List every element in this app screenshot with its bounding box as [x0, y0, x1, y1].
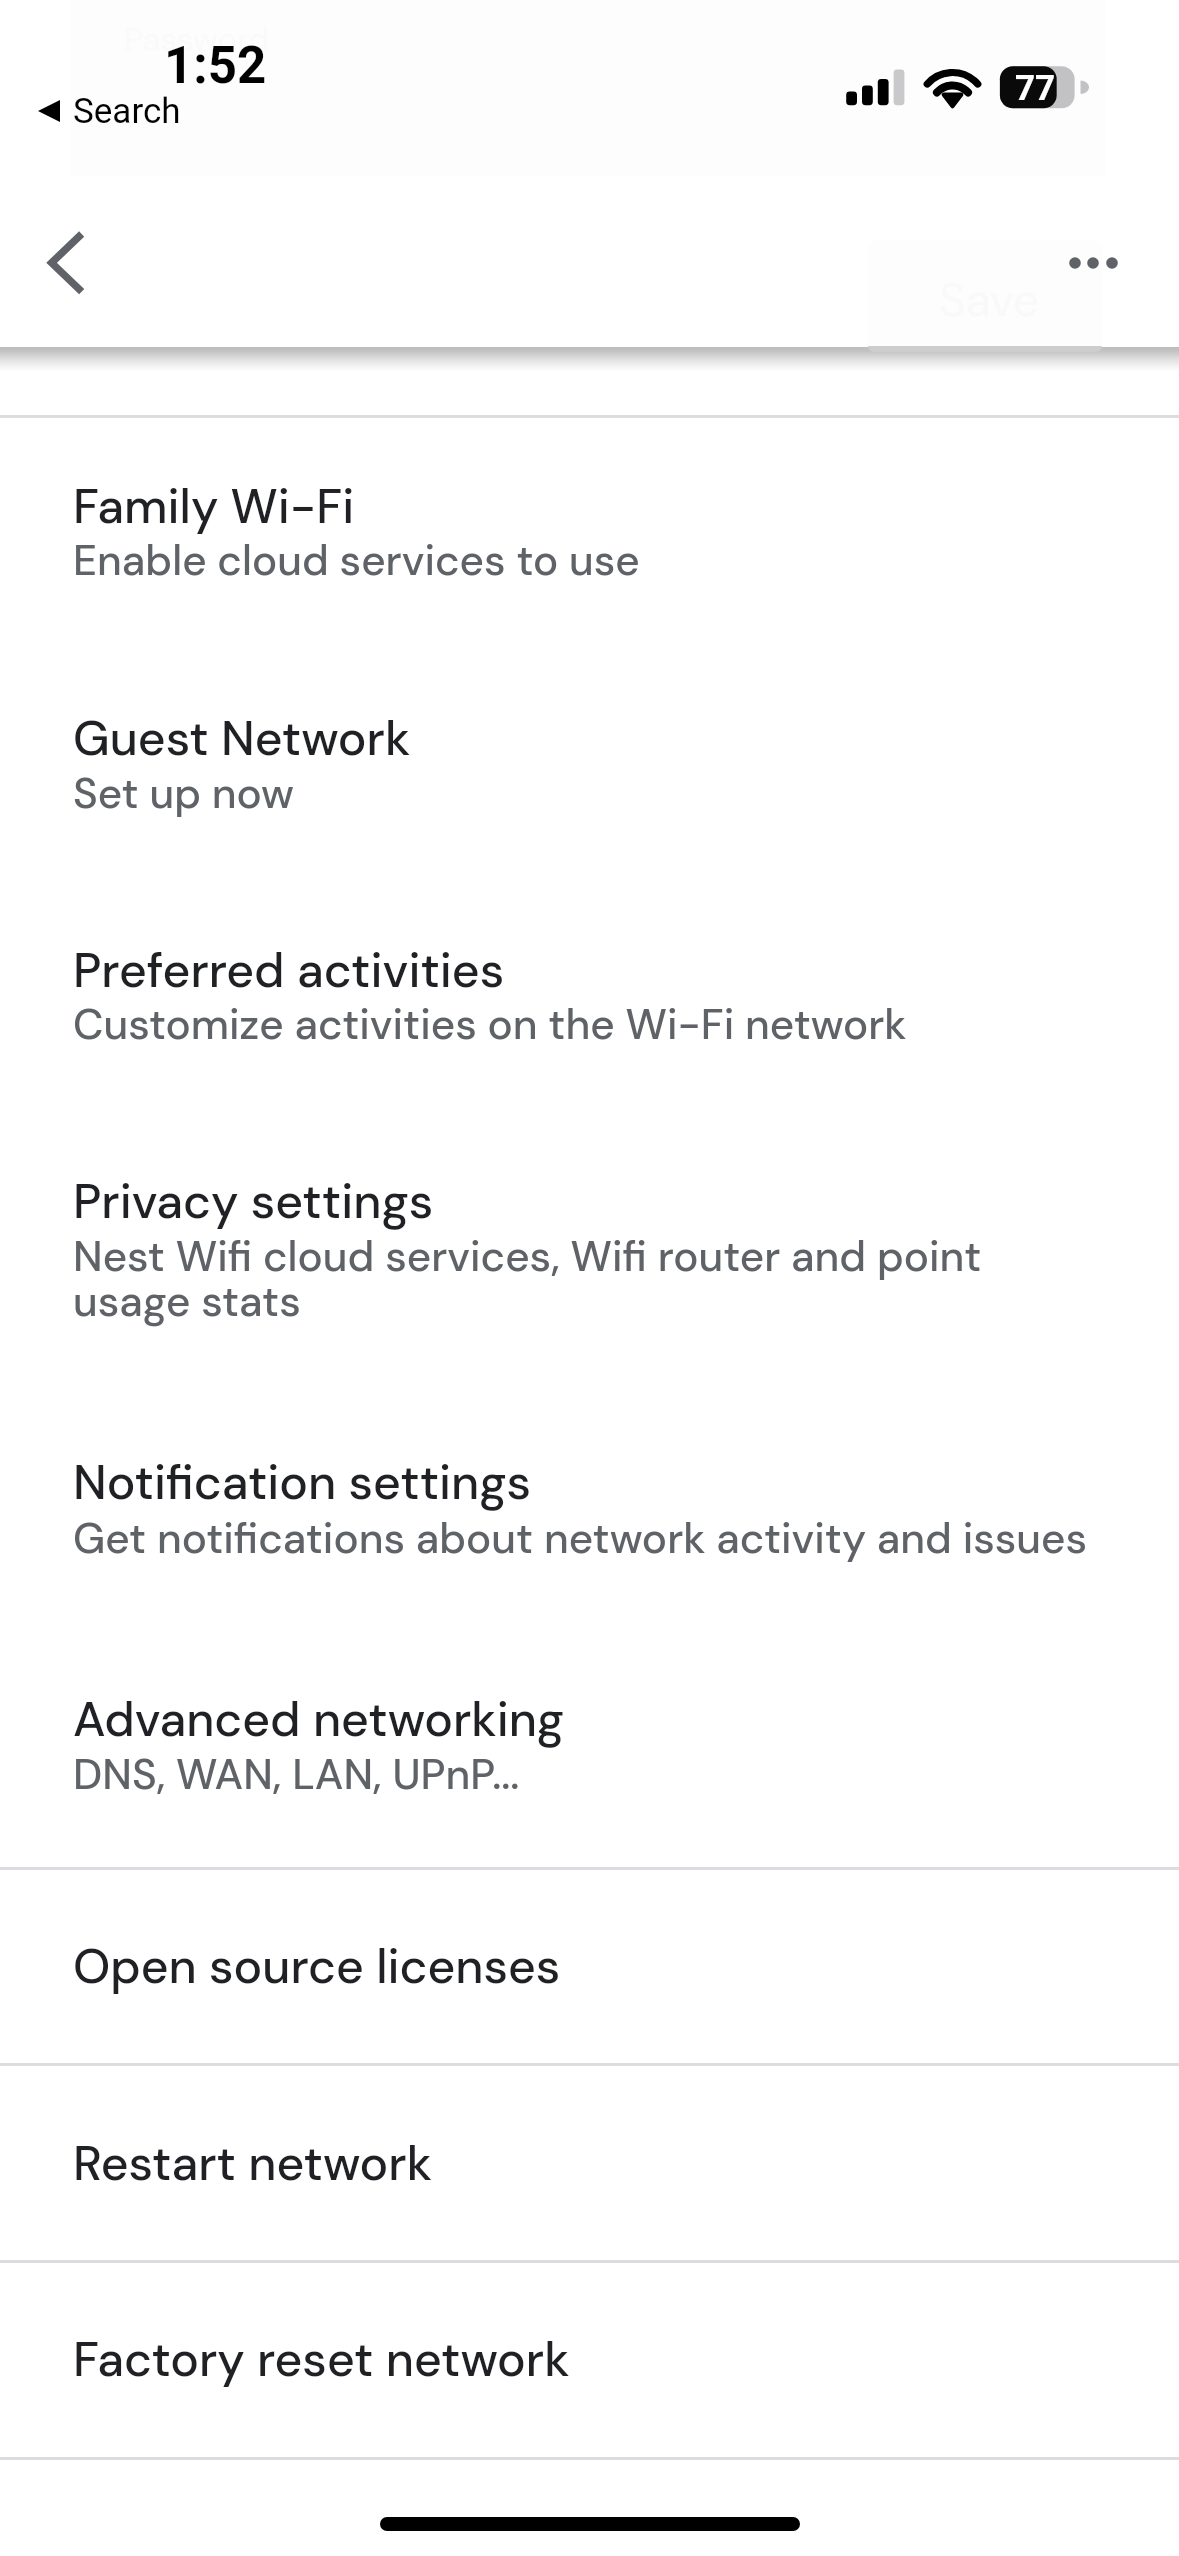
staticText: Privacy settings	[73, 1170, 434, 1232]
staticText: Notification settings	[73, 1451, 532, 1513]
button[interactable]: Privacy settings	[0, 1113, 1179, 1394]
staticText: Password	[124, 18, 270, 61]
button[interactable]: Family Wi-Fi	[0, 417, 1179, 649]
button[interactable]: Factory reset network	[0, 2263, 1179, 2457]
button[interactable]: Back	[16, 205, 126, 323]
staticText: Open source licenses	[73, 1935, 561, 1997]
staticText: Set up now	[73, 766, 295, 821]
staticText: Advanced networking	[73, 1688, 565, 1750]
button[interactable]: Guest Network	[0, 649, 1179, 881]
button[interactable]: Advanced networking	[0, 1630, 1179, 1867]
staticText: Search	[73, 91, 181, 132]
button[interactable]: Open source licenses	[0, 1870, 1179, 2063]
button[interactable]: More options	[1020, 205, 1152, 323]
staticText: Preferred activities	[73, 939, 505, 1001]
button[interactable]: Preferred activities	[0, 881, 1179, 1113]
button[interactable]: Notification settings	[0, 1394, 1179, 1630]
button[interactable]	[20, 80, 210, 142]
staticText: Enable cloud services to use	[73, 533, 640, 588]
staticText: Get notifications about network activity…	[73, 1511, 1088, 1566]
staticText: Nest Wifi cloud services, Wifi router an…	[73, 1229, 1003, 1329]
button[interactable]: Restart network	[0, 2066, 1179, 2260]
staticText: Customize activities on the Wi-Fi networ…	[73, 997, 907, 1052]
staticText: 1:52	[164, 36, 267, 96]
staticText: Factory reset network	[73, 2328, 570, 2390]
staticText: Guest Network	[73, 707, 411, 769]
staticText: Family Wi-Fi	[73, 475, 355, 537]
staticText: DNS, WAN, LAN, UPnP...	[73, 1747, 520, 1802]
staticText: 77	[1015, 68, 1056, 109]
staticText: Restart network	[73, 2132, 432, 2194]
